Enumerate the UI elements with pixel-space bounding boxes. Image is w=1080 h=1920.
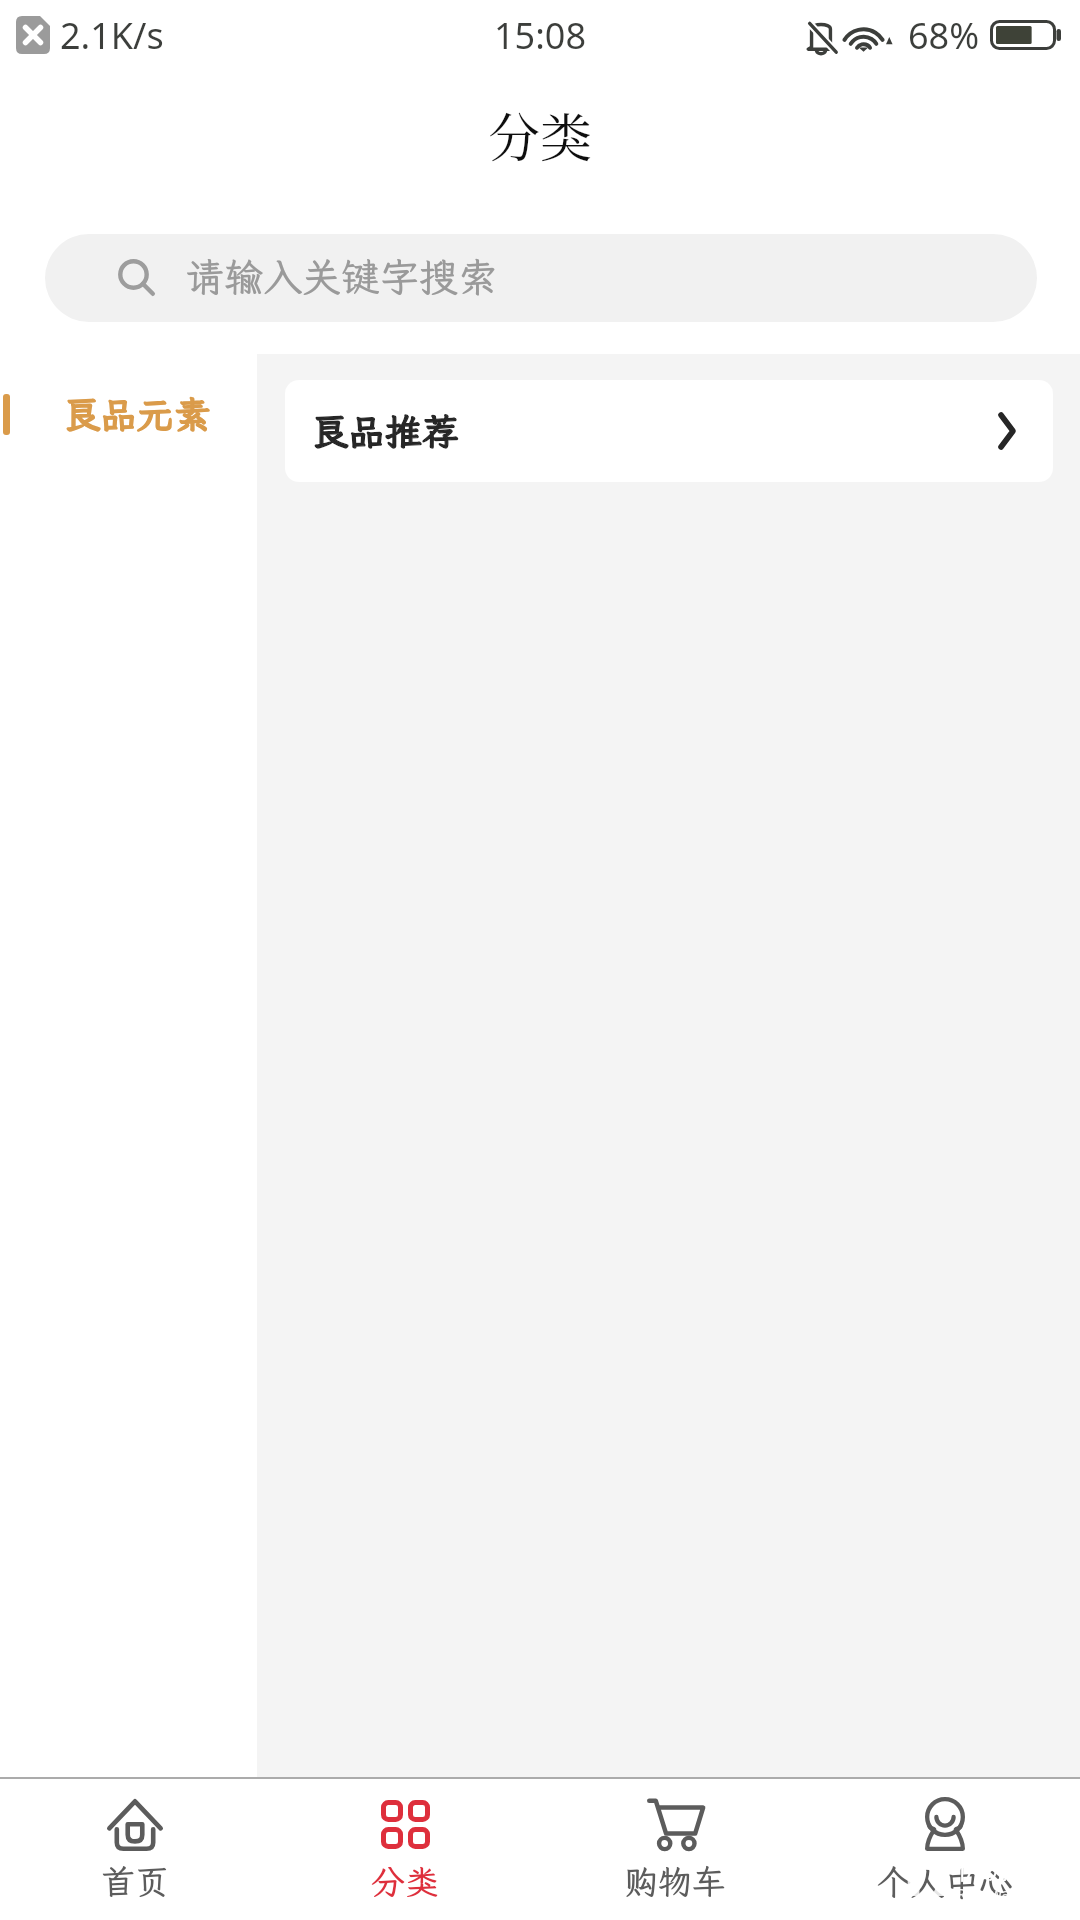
staticText: 仍玩游戏: [957, 1854, 1057, 1885]
staticText: 分类: [371, 1859, 439, 1904]
button[interactable]: 请输入关键字搜索: [45, 234, 1037, 322]
staticText: 68%: [908, 11, 980, 60]
staticText: 分类: [488, 97, 593, 172]
staticText: Rengwan Games: [957, 1884, 1068, 1903]
button[interactable]: 良品元素: [0, 354, 257, 474]
staticText: 良品元素: [63, 390, 211, 439]
staticText: 良品推荐: [311, 407, 459, 456]
button[interactable]: 首页: [0, 1779, 270, 1920]
staticText: 个人中心: [877, 1860, 1013, 1905]
staticText: 请输入关键字搜索: [185, 251, 498, 302]
staticText: 首页: [101, 1859, 169, 1904]
staticText: 良品元素: [63, 390, 211, 439]
button[interactable]: 良品推荐: [285, 380, 1053, 482]
staticText: 2.1K/s: [60, 11, 164, 60]
button[interactable]: 购物车: [540, 1779, 810, 1920]
staticText: 良品推荐: [311, 407, 459, 456]
button[interactable]: 个人中心: [810, 1779, 1080, 1920]
button[interactable]: 分类: [270, 1779, 540, 1920]
staticText: 15:08: [494, 11, 587, 60]
staticText: 购物车: [624, 1859, 726, 1904]
